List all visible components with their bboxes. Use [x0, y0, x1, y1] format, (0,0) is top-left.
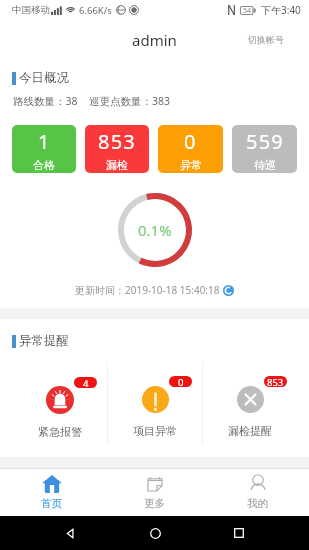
staticText: 6.66K/s — [79, 4, 112, 17]
button[interactable]: 1 — [12, 125, 76, 173]
button[interactable]: 0 — [158, 125, 223, 173]
staticText: 我的 — [247, 497, 268, 510]
staticText: 更新时间：2019-10-18 15:40:18 — [75, 283, 220, 297]
button[interactable]: 更多 — [103, 469, 206, 516]
button[interactable]: 刷新 — [223, 285, 234, 296]
button[interactable]: 853 — [203, 362, 297, 444]
staticText: 今日概况 — [19, 70, 69, 86]
button[interactable]: Home — [140, 518, 170, 548]
staticText: 项目异常 — [133, 424, 177, 438]
staticText: 异常提醒 — [19, 333, 69, 349]
staticText: 巡更点数量：383 — [89, 94, 171, 108]
staticText: 异常 — [180, 158, 202, 172]
staticText: 54 — [243, 6, 252, 15]
staticText: 559 — [246, 128, 284, 155]
staticText: 更多 — [144, 497, 165, 510]
staticText: 切换帐号 — [248, 34, 284, 45]
staticText: 首页 — [41, 497, 62, 510]
button[interactable]: 0 — [108, 362, 202, 444]
staticText: 853 — [267, 376, 284, 387]
staticText: 0.1% — [138, 220, 172, 240]
button[interactable]: 559 — [232, 125, 297, 173]
staticText: 0 — [178, 376, 184, 387]
button[interactable]: 853 — [85, 125, 149, 173]
button[interactable]: Back — [55, 518, 85, 548]
button[interactable]: Recents — [224, 518, 254, 548]
staticText: 下午3:40 — [261, 3, 301, 17]
staticText: 待巡 — [254, 158, 276, 172]
button[interactable]: 4 — [12, 362, 107, 444]
button[interactable]: 切换帐号 — [238, 26, 309, 53]
staticText: 853 — [98, 128, 136, 155]
staticText: 中国移动 — [12, 4, 50, 16]
staticText: admin — [132, 30, 177, 50]
staticText: 4 — [83, 377, 89, 388]
staticText: 合格 — [33, 158, 55, 172]
staticText: 漏检 — [106, 158, 128, 172]
staticText: 路线数量：38 — [13, 94, 78, 108]
staticText: 漏检提醒 — [228, 424, 272, 438]
staticText: 0 — [184, 128, 197, 155]
button[interactable]: 我的 — [206, 469, 309, 516]
staticText: 紧急报警 — [38, 425, 82, 439]
button[interactable]: 首页 — [0, 469, 103, 516]
staticText: 1 — [38, 128, 51, 155]
